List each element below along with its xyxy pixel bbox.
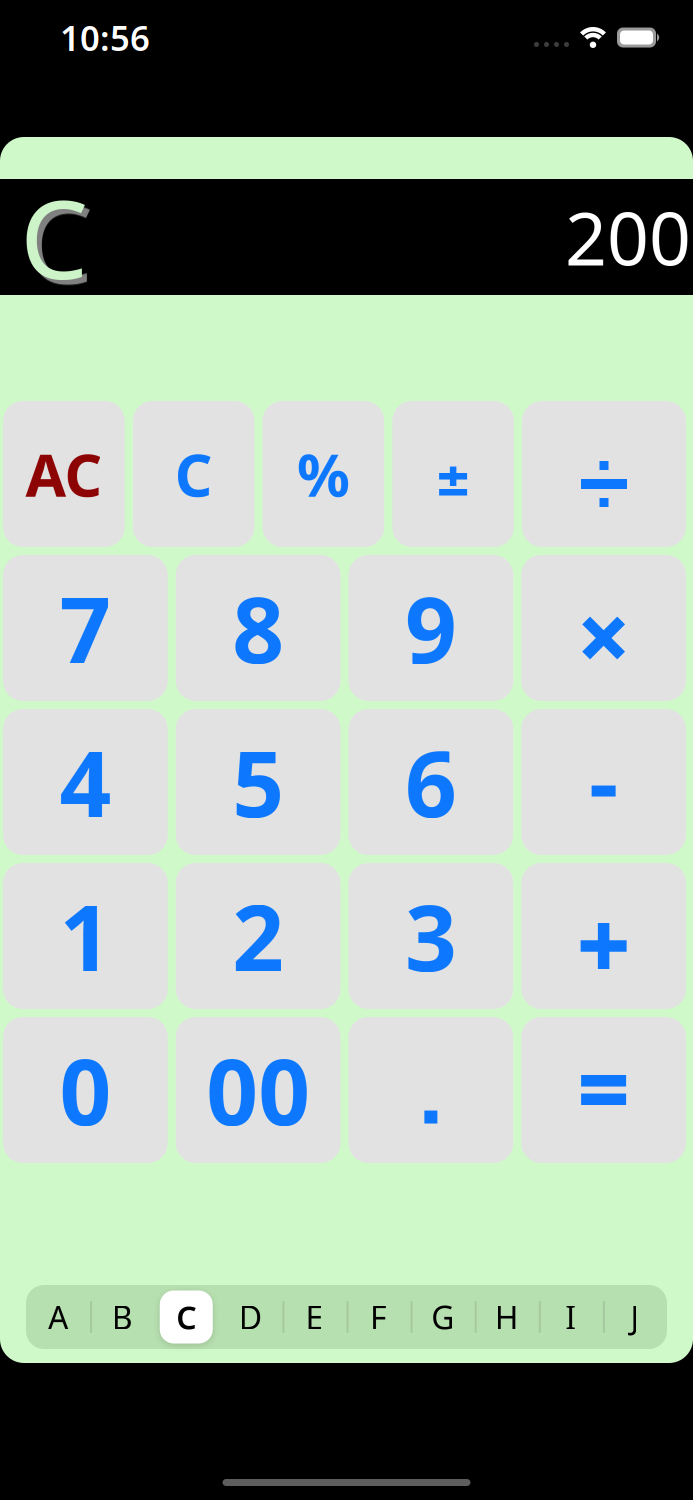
button[interactable]: plus bbox=[521, 863, 686, 1009]
staticText: G bbox=[431, 1296, 454, 1338]
button[interactable]: 5 bbox=[176, 709, 341, 855]
button[interactable]: D bbox=[218, 1285, 282, 1349]
button[interactable]: 3 bbox=[348, 863, 513, 1009]
staticText: 5 bbox=[232, 722, 284, 842]
staticText: 4 bbox=[59, 722, 111, 842]
button[interactable]: minus bbox=[521, 709, 686, 855]
staticText: 8 bbox=[232, 568, 284, 688]
staticText: AC bbox=[25, 435, 102, 513]
button[interactable]: 1 bbox=[3, 863, 168, 1009]
button[interactable]: 8 bbox=[176, 555, 341, 701]
staticText: H bbox=[495, 1296, 519, 1338]
button[interactable]: 2 bbox=[176, 863, 341, 1009]
button[interactable]: H bbox=[475, 1285, 539, 1349]
staticText: % bbox=[297, 435, 350, 513]
button[interactable]: G bbox=[411, 1285, 475, 1349]
staticText: 3 bbox=[405, 876, 457, 996]
button[interactable]: A bbox=[26, 1285, 90, 1349]
button[interactable]: 4 bbox=[3, 709, 168, 855]
button[interactable]: 7 bbox=[3, 555, 168, 701]
staticText: 9 bbox=[405, 568, 457, 688]
button[interactable]: 6 bbox=[348, 709, 513, 855]
button[interactable]: 00 bbox=[176, 1017, 341, 1163]
button[interactable]: J bbox=[603, 1285, 667, 1349]
button[interactable]: AC bbox=[3, 401, 125, 547]
button[interactable]: E bbox=[282, 1285, 346, 1349]
button[interactable]: equals bbox=[521, 1017, 686, 1163]
staticText: B bbox=[112, 1296, 133, 1338]
button[interactable]: 9 bbox=[348, 555, 513, 701]
button[interactable]: C bbox=[133, 401, 255, 547]
button[interactable]: decimal point bbox=[348, 1017, 513, 1163]
button[interactable]: plus minus bbox=[392, 401, 514, 547]
button[interactable]: F bbox=[346, 1285, 411, 1349]
staticText: 6 bbox=[405, 722, 457, 842]
staticText: C bbox=[176, 1296, 196, 1338]
staticText: 2 bbox=[232, 876, 284, 996]
staticText: A bbox=[48, 1296, 68, 1338]
staticText: C bbox=[175, 435, 213, 513]
button[interactable]: % bbox=[262, 401, 384, 547]
staticText: 0 bbox=[59, 1030, 111, 1150]
staticText: 7 bbox=[59, 568, 111, 688]
button[interactable]: 0 bbox=[3, 1017, 168, 1163]
staticText: 10:56 bbox=[60, 14, 150, 60]
staticText: E bbox=[305, 1296, 323, 1338]
staticText: 1 bbox=[59, 876, 111, 996]
button[interactable]: multiply bbox=[521, 555, 686, 701]
staticText: D bbox=[239, 1296, 262, 1338]
staticText: J bbox=[630, 1296, 639, 1338]
staticText: I bbox=[565, 1296, 576, 1338]
button[interactable]: I bbox=[539, 1285, 603, 1349]
staticText: C bbox=[20, 165, 88, 309]
staticText: 00 bbox=[206, 1030, 310, 1150]
button[interactable]: divide bbox=[522, 401, 686, 547]
staticText: F bbox=[370, 1296, 387, 1338]
staticText: 200 bbox=[565, 188, 691, 286]
button[interactable]: C bbox=[154, 1285, 218, 1349]
button[interactable]: B bbox=[90, 1285, 154, 1349]
